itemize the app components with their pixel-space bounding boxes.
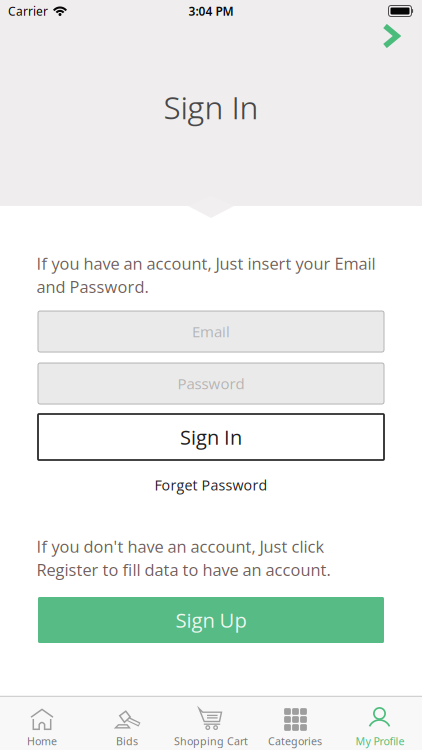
button[interactable]: Sign Up — [38, 597, 384, 643]
button[interactable]: Bids — [85, 696, 169, 750]
button[interactable]: Sign In — [38, 414, 384, 460]
button[interactable]: Email — [38, 311, 384, 352]
staticText: Shopping Cart — [174, 734, 248, 748]
staticText: Sign Up — [175, 606, 246, 634]
staticText: 3:04 PM — [188, 3, 233, 19]
button[interactable]: Shopping Cart — [169, 696, 253, 750]
button[interactable]: Forget Password — [154, 475, 267, 495]
button[interactable]: Categories — [253, 696, 337, 750]
staticText: Home — [27, 734, 57, 748]
staticText: Sign In — [180, 423, 242, 451]
staticText: Categories — [268, 734, 322, 748]
staticText: If you don't have an account, Just click… — [36, 535, 330, 581]
staticText: My Profile — [355, 734, 404, 748]
staticText: Forget Password — [154, 475, 267, 495]
staticText: Carrier — [8, 3, 48, 19]
staticText: Bids — [116, 734, 138, 748]
staticText: If you have an account, Just insert your… — [36, 252, 375, 298]
button[interactable] — [381, 23, 400, 49]
button[interactable]: My Profile — [338, 696, 422, 750]
staticText: Email — [192, 321, 230, 342]
staticText: Password — [177, 373, 244, 394]
staticText: Sign In — [163, 86, 258, 128]
button[interactable]: Password — [38, 363, 384, 404]
button[interactable]: Home — [0, 696, 84, 750]
